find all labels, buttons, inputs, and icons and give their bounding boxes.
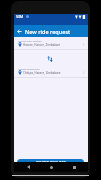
staticText: Chitipa, Harare, Zimbabwe bbox=[23, 71, 82, 75]
staticText: Choose destination bbox=[18, 67, 40, 70]
button[interactable]: Choose start location bbox=[14, 37, 88, 49]
button[interactable]: Home bbox=[42, 162, 60, 172]
button[interactable]: Back bbox=[19, 162, 37, 172]
button[interactable]: Recent apps bbox=[65, 162, 83, 172]
staticText: Choose start location bbox=[18, 39, 42, 42]
button[interactable]: Choose destination bbox=[14, 65, 88, 77]
staticText: SIM bbox=[16, 14, 24, 19]
button[interactable]: Swap locations bbox=[45, 54, 54, 63]
staticText: New ride request bbox=[25, 28, 71, 35]
button[interactable]: Navigate back bbox=[14, 25, 24, 37]
staticText: Harare, Harare, Zimbabwe bbox=[23, 43, 82, 47]
staticText: REVIEW REQUEST bbox=[36, 160, 66, 165]
button[interactable]: REVIEW REQUEST bbox=[17, 159, 84, 166]
